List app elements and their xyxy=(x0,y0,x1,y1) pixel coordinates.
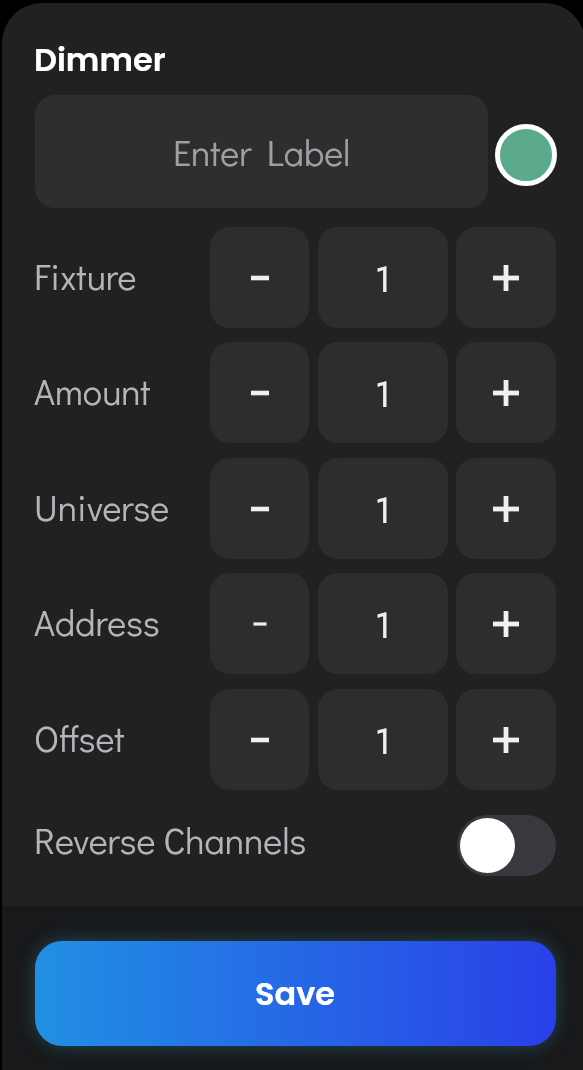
button[interactable]: Decrease Amount xyxy=(210,342,309,443)
button[interactable]: Increase Amount xyxy=(456,342,556,443)
button[interactable]: Save xyxy=(35,941,556,1046)
staticText: 1 xyxy=(375,717,391,768)
staticText: Reverse Channels xyxy=(34,816,307,863)
button[interactable]: Pick colour xyxy=(495,124,557,186)
staticText: 1 xyxy=(375,601,391,652)
staticText: 1 xyxy=(375,486,391,537)
staticText: Save xyxy=(255,971,336,1016)
staticText: Dimmer xyxy=(34,37,166,82)
button[interactable]: Decrease Universe xyxy=(210,458,309,559)
staticText: Offset xyxy=(34,714,125,761)
button[interactable]: 1 xyxy=(318,573,448,674)
button[interactable]: Decrease Offset xyxy=(210,689,309,790)
button[interactable]: 1 xyxy=(318,458,448,559)
staticText: Amount xyxy=(34,367,151,414)
staticText: Fixture xyxy=(34,252,137,299)
button[interactable]: Enter Label xyxy=(35,95,488,208)
staticText: Universe xyxy=(34,483,170,530)
staticText: Enter Label xyxy=(173,128,351,175)
button[interactable]: Increase Fixture xyxy=(456,227,556,328)
button[interactable]: Decrease Fixture xyxy=(210,227,309,328)
button[interactable]: 1 xyxy=(318,689,448,790)
button[interactable]: Increase Offset xyxy=(456,689,556,790)
button[interactable]: Reverse Channels xyxy=(457,815,556,876)
staticText: Address xyxy=(34,598,160,645)
button[interactable]: 1 xyxy=(318,342,448,443)
button[interactable]: Increase Universe xyxy=(456,458,556,559)
button[interactable]: 1 xyxy=(318,227,448,328)
button[interactable]: Increase Address xyxy=(456,573,556,674)
button[interactable]: Decrease Address xyxy=(210,573,309,674)
staticText: 1 xyxy=(375,370,391,421)
staticText: 1 xyxy=(375,255,391,306)
